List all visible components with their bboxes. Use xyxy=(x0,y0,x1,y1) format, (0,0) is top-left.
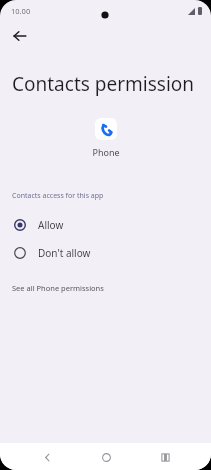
button[interactable]: Don't allow xyxy=(0,239,211,267)
staticText: Don't allow xyxy=(38,246,91,260)
button[interactable]: Home xyxy=(93,444,119,470)
button[interactable]: See all Phone permissions xyxy=(0,281,211,295)
staticText: 10.00 xyxy=(11,6,31,16)
staticText: See all Phone permissions xyxy=(12,283,104,293)
button[interactable]: Back xyxy=(34,444,60,470)
staticText: Allow xyxy=(38,218,64,232)
staticText: Contacts permission xyxy=(12,71,195,97)
staticText: Phone xyxy=(92,146,120,158)
button[interactable]: Back xyxy=(6,22,34,50)
button[interactable]: Allow xyxy=(0,211,211,239)
staticText: Contacts access for this app xyxy=(12,191,104,201)
button[interactable]: Recent apps xyxy=(152,444,178,470)
